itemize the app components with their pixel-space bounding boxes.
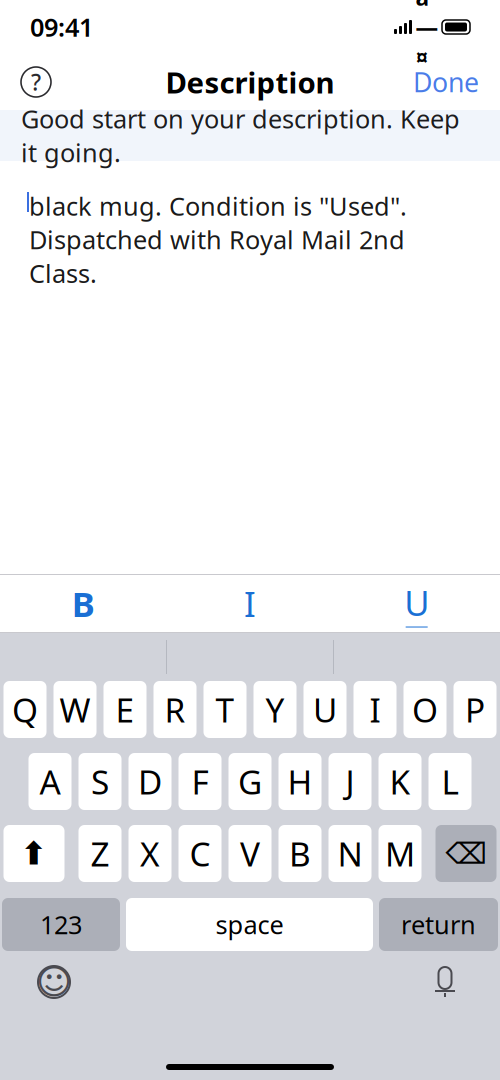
button[interactable]: Shift <box>3 825 64 882</box>
button[interactable]: V <box>228 825 271 882</box>
staticText: Done <box>413 64 479 100</box>
button[interactable]: I <box>167 574 333 633</box>
staticText: I <box>369 687 380 732</box>
staticText: Y <box>265 687 284 732</box>
button[interactable]: 123 <box>2 898 120 951</box>
staticText: H <box>287 759 312 804</box>
button[interactable]: Dictation <box>428 964 462 1000</box>
button[interactable]: P <box>453 681 496 738</box>
staticText: O <box>412 687 438 732</box>
button[interactable]: Emoji <box>38 966 70 998</box>
button[interactable]: A <box>28 753 71 810</box>
staticText: space <box>215 908 283 941</box>
staticText: X <box>140 831 160 876</box>
button[interactable]: D <box>128 753 171 810</box>
button[interactable]: E <box>103 681 146 738</box>
button[interactable]: S <box>78 753 121 810</box>
button[interactable]: I <box>353 681 396 738</box>
staticText: Description <box>165 62 334 101</box>
button[interactable]: M <box>378 825 421 882</box>
staticText: â—¤ <box>415 0 438 72</box>
button[interactable]: Q <box>3 681 46 738</box>
button[interactable]: G <box>228 753 271 810</box>
staticText: ☺ <box>36 962 72 1002</box>
button[interactable]: K <box>378 753 421 810</box>
staticText: return <box>401 908 476 941</box>
staticText: ? <box>31 67 41 97</box>
staticText: Good start on your description. Keep it … <box>21 102 460 169</box>
button[interactable]: N <box>328 825 371 882</box>
staticText: E <box>115 687 134 732</box>
staticText: J <box>345 759 354 804</box>
staticText: 123 <box>40 908 82 941</box>
staticText: P <box>465 687 485 732</box>
staticText: T <box>215 687 234 732</box>
button[interactable]: W <box>53 681 96 738</box>
button[interactable]: O <box>403 681 446 738</box>
button[interactable]: J <box>328 753 371 810</box>
staticText: black mug. Condition is "Used". Dispatch… <box>29 189 407 290</box>
button[interactable]: R <box>153 681 196 738</box>
button[interactable]: U <box>333 574 500 633</box>
staticText: U <box>404 579 429 625</box>
staticText: C <box>189 831 210 876</box>
button[interactable]: X <box>128 825 171 882</box>
staticText: ⬆ <box>20 835 47 872</box>
staticText: R <box>164 687 185 732</box>
button[interactable]: Help <box>21 67 51 97</box>
staticText: S <box>91 759 109 804</box>
staticText: U <box>313 687 337 732</box>
staticText: K <box>389 759 410 804</box>
button[interactable]: C <box>178 825 221 882</box>
button[interactable]: return <box>379 898 498 951</box>
staticText: M <box>385 831 415 876</box>
button[interactable]: B <box>0 574 167 633</box>
button[interactable]: B <box>278 825 321 882</box>
staticText: L <box>441 759 458 804</box>
staticText: D <box>138 759 162 804</box>
staticText: A <box>39 759 60 804</box>
staticText: B <box>72 580 95 626</box>
staticText: V <box>240 831 260 876</box>
staticText: N <box>337 831 362 876</box>
staticText: Z <box>90 831 109 876</box>
staticText: I <box>244 580 256 626</box>
button[interactable]: H <box>278 753 321 810</box>
staticText: B <box>289 831 311 876</box>
button[interactable]: U <box>303 681 346 738</box>
button[interactable]: Done <box>413 64 479 100</box>
staticText: W <box>59 687 90 732</box>
staticText: G <box>238 759 262 804</box>
staticText: F <box>191 759 208 804</box>
staticText: 09:41 <box>30 10 93 44</box>
button[interactable]: L <box>428 753 471 810</box>
button[interactable]: space <box>126 898 373 951</box>
staticText: Q <box>12 687 38 732</box>
button[interactable]: T <box>203 681 246 738</box>
button[interactable]: F <box>178 753 221 810</box>
button[interactable]: Delete <box>435 825 496 882</box>
button[interactable]: Y <box>253 681 296 738</box>
button[interactable]: Z <box>78 825 121 882</box>
staticText: ⌫ <box>445 837 486 870</box>
